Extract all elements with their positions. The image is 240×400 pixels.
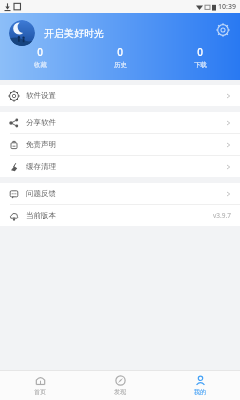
staticText: 下载 (194, 61, 207, 69)
button[interactable]: 我的 (160, 370, 240, 400)
button[interactable]: 免责声明 (0, 134, 240, 155)
staticText: 当前版本 (26, 211, 56, 220)
staticText: 免责声明 (26, 140, 56, 149)
button[interactable]: 当前版本 (0, 205, 240, 226)
staticText: 发现 (114, 388, 126, 396)
staticText: 首页 (34, 388, 46, 396)
staticText: 0 (197, 45, 203, 59)
button[interactable]: 分享软件 (0, 112, 240, 133)
button[interactable]: 发现 (80, 370, 160, 400)
button[interactable]: 0 (80, 43, 160, 71)
button[interactable]: 0 (160, 43, 240, 71)
staticText: 开启美好时光 (44, 27, 104, 40)
staticText: 0 (37, 45, 43, 59)
staticText: 0 (117, 45, 123, 59)
button[interactable]: 0 (0, 43, 80, 71)
staticText: 我的 (194, 388, 206, 396)
staticText: 历史 (114, 61, 127, 69)
staticText: 10:39 (218, 2, 236, 12)
button[interactable]: 开启美好时光 (9, 20, 104, 46)
button[interactable]: Settings (214, 21, 232, 39)
staticText: 缓存清理 (26, 162, 56, 171)
staticText: v3.9.7 (213, 211, 231, 220)
staticText: 收藏 (34, 61, 47, 69)
button[interactable]: 软件设置 (0, 85, 240, 106)
staticText: 软件设置 (26, 91, 56, 100)
button[interactable]: 缓存清理 (0, 156, 240, 177)
button[interactable]: 首页 (0, 370, 80, 400)
staticText: 分享软件 (26, 118, 56, 127)
button[interactable]: 问题反馈 (0, 183, 240, 204)
staticText: 问题反馈 (26, 189, 56, 198)
